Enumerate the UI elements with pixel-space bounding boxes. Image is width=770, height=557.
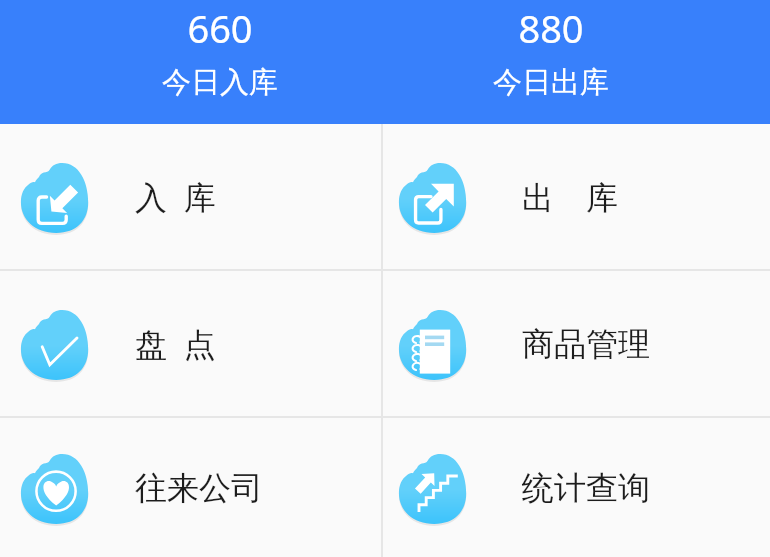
staticText: 出 库 [522,175,618,219]
staticText: 入 库 [135,175,216,219]
staticText: 今日出库 [493,64,609,101]
button[interactable]: 统计查询 [383,418,770,557]
staticText: 今日入库 [162,64,278,101]
button[interactable]: 商品管理 [383,271,770,416]
staticText: 商品管理 [522,324,650,364]
staticText: 往来公司 [135,468,263,508]
staticText: 盘 点 [135,322,216,366]
button[interactable]: 往来公司 [0,418,381,557]
button[interactable]: 盘 点 [0,271,381,416]
button[interactable]: 880 [385,0,716,124]
staticText: 统计查询 [522,468,650,508]
button[interactable]: 入 库 [0,124,381,269]
button[interactable]: 出 库 [383,124,770,269]
staticText: 880 [518,2,584,54]
button[interactable]: 660 [54,0,385,124]
staticText: 660 [187,2,253,54]
